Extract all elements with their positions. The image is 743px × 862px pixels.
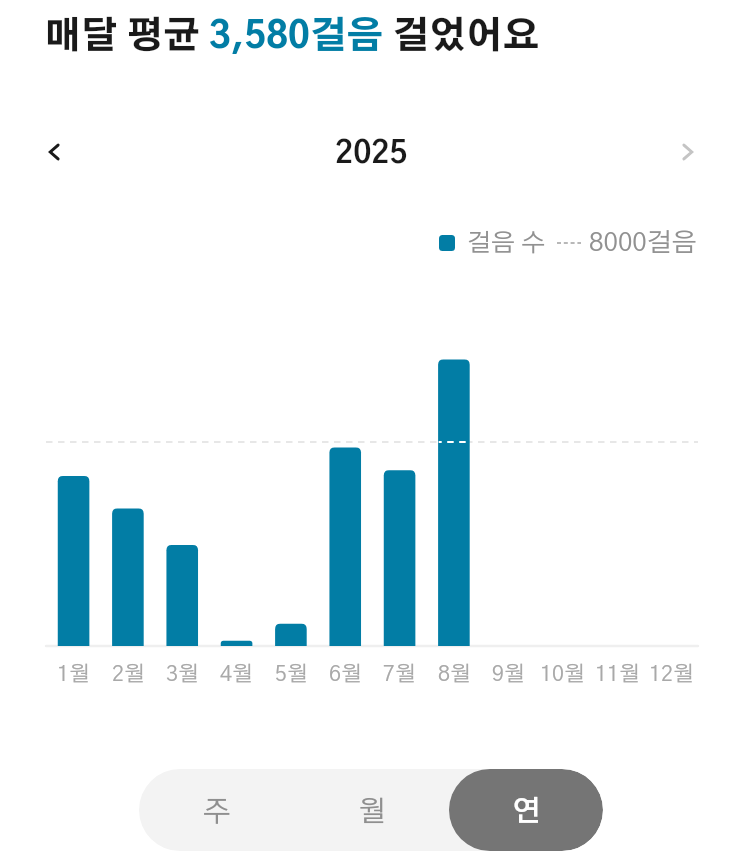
staticText: 3월: [166, 664, 199, 686]
staticText: 월: [358, 798, 386, 827]
staticText: 8000걸음: [589, 230, 697, 256]
staticText: 9월: [492, 664, 525, 686]
staticText: 7월: [383, 664, 416, 686]
button[interactable]: 연: [449, 769, 603, 851]
staticText: 10월: [540, 664, 585, 686]
button[interactable]: 월: [294, 769, 449, 851]
button[interactable]: 주: [139, 769, 294, 851]
staticText: 매달 평균 3,580걸음 걸었어요: [44, 19, 540, 56]
staticText: 연: [512, 798, 541, 827]
staticText: 6월: [329, 664, 362, 686]
button[interactable]: Previous year: [33, 131, 75, 173]
staticText: 걸음 수: [467, 231, 546, 256]
staticText: 2월: [112, 664, 145, 686]
staticText: 2025: [335, 138, 408, 169]
staticText: 11월: [595, 664, 640, 686]
staticText: 8월: [438, 664, 471, 686]
staticText: 4월: [220, 664, 253, 686]
staticText: 5월: [275, 664, 308, 686]
staticText: 1월: [57, 664, 90, 686]
staticText: 주: [203, 798, 231, 827]
button[interactable]: Next year: [667, 131, 709, 173]
staticText: 12월: [649, 664, 694, 686]
